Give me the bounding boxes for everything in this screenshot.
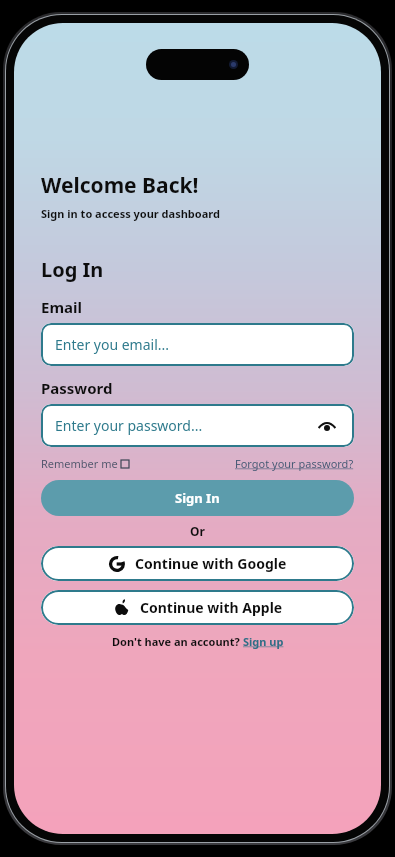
staticText: Sign In — [175, 489, 220, 507]
button[interactable]: Enter your password... — [41, 404, 354, 447]
button[interactable]: Sign In — [41, 480, 354, 516]
button[interactable]: Enter you email... — [41, 323, 354, 366]
button[interactable]: Forgot your password? — [235, 456, 354, 471]
staticText: Or — [190, 523, 205, 539]
button[interactable]: Show password — [314, 413, 340, 439]
staticText: Continue with Apple — [140, 598, 283, 617]
staticText: Enter your password... — [55, 416, 203, 435]
staticText: Welcome Back! — [41, 171, 199, 200]
staticText: Password — [41, 378, 113, 398]
button[interactable]: Continue with Google — [41, 546, 354, 581]
button[interactable]: Sign up — [243, 634, 284, 649]
staticText: Log In — [41, 256, 104, 283]
staticText: Remember me — [41, 456, 118, 471]
staticText: Continue with Google — [135, 554, 287, 573]
button[interactable]: Remember me — [41, 456, 129, 471]
staticText: Email — [41, 297, 82, 317]
staticText: Don't have an account? — [112, 634, 243, 649]
staticText: Sign in to access your dashboard — [41, 206, 220, 221]
button[interactable]: Continue with Apple — [41, 590, 354, 625]
staticText: Enter you email... — [55, 335, 170, 354]
